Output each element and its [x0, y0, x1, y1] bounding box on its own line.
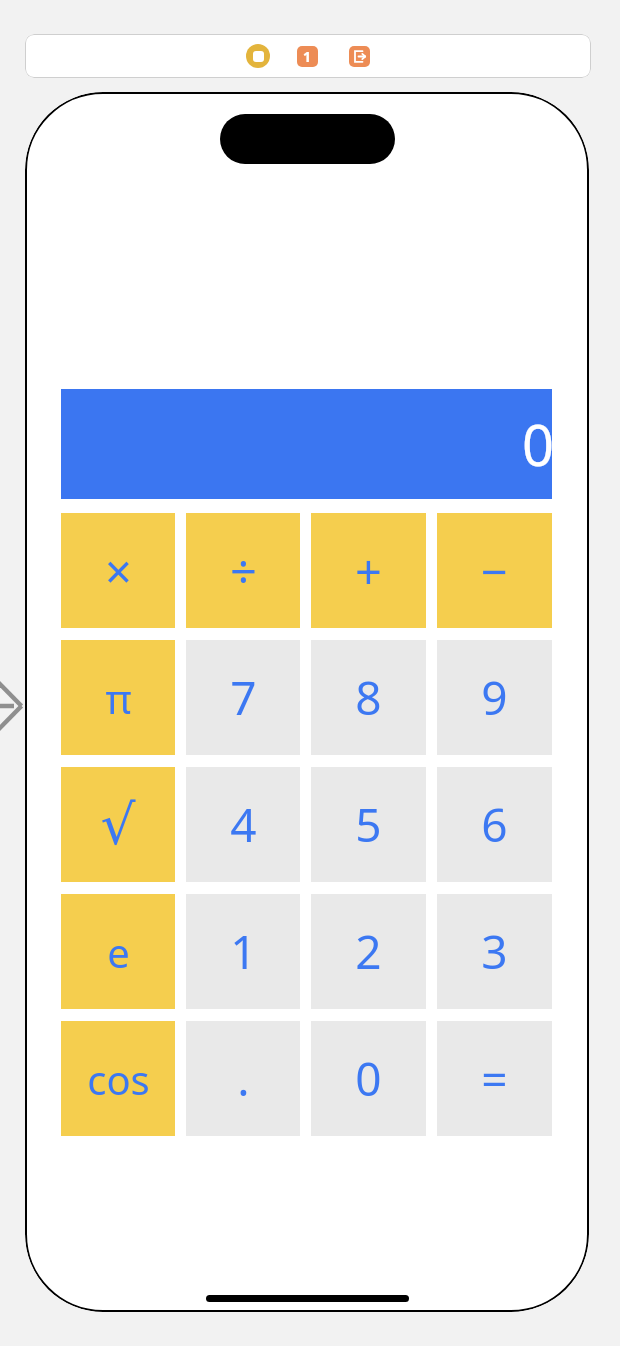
button[interactable]: cos — [61, 1021, 175, 1136]
button[interactable]: 7 — [186, 640, 300, 755]
button[interactable]: 9 — [437, 640, 552, 755]
staticText: + — [355, 539, 382, 603]
button[interactable] — [246, 44, 270, 68]
button[interactable]: − — [437, 513, 552, 628]
staticText: 3 — [481, 920, 508, 983]
button[interactable]: e — [61, 894, 175, 1009]
staticText: e — [107, 925, 130, 979]
staticText: = — [481, 1047, 508, 1110]
staticText: π — [105, 671, 132, 725]
button[interactable]: 1 — [297, 46, 318, 67]
staticText: 4 — [230, 793, 257, 856]
button[interactable]: 0 — [311, 1021, 426, 1136]
staticText: 1 — [303, 47, 312, 66]
button[interactable]: ÷ — [186, 513, 300, 628]
button[interactable]: 1 — [186, 894, 300, 1009]
staticText: . — [237, 1047, 250, 1110]
staticText: 7 — [230, 666, 257, 729]
staticText: ÷ — [230, 539, 257, 603]
button[interactable]: 5 — [311, 767, 426, 882]
staticText: cos — [87, 1052, 150, 1106]
button[interactable]: 2 — [311, 894, 426, 1009]
staticText: 0 — [522, 406, 555, 482]
button[interactable]: . — [186, 1021, 300, 1136]
staticText: 9 — [481, 666, 508, 729]
button[interactable]: + — [311, 513, 426, 628]
staticText: 2 — [355, 920, 382, 983]
staticText: 8 — [355, 666, 382, 729]
staticText: 5 — [355, 793, 382, 856]
button[interactable]: = — [437, 1021, 552, 1136]
staticText: √ — [100, 793, 136, 857]
button[interactable]: × — [61, 513, 175, 628]
staticText: 6 — [481, 793, 508, 856]
staticText: − — [481, 539, 508, 603]
button[interactable]: 4 — [186, 767, 300, 882]
button[interactable]: 6 — [437, 767, 552, 882]
button[interactable]: π — [61, 640, 175, 755]
button[interactable] — [349, 46, 370, 67]
staticText: 0 — [355, 1047, 382, 1110]
staticText: × — [105, 539, 132, 603]
button[interactable]: 0 — [61, 389, 552, 499]
staticText: 1 — [230, 920, 257, 983]
button[interactable]: 8 — [311, 640, 426, 755]
button[interactable]: √ — [61, 767, 175, 882]
button[interactable]: 3 — [437, 894, 552, 1009]
